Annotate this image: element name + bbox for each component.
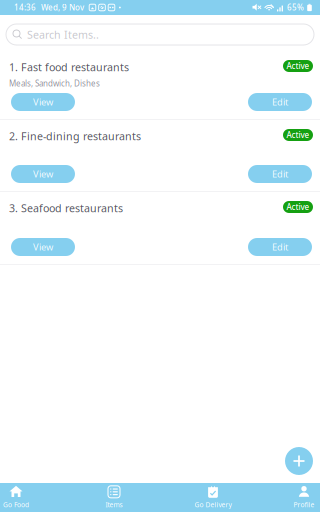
button[interactable]: Add bbox=[285, 447, 313, 475]
button[interactable]: View bbox=[11, 238, 75, 256]
staticText: 1. Fast food restaurants bbox=[9, 60, 129, 74]
staticText: Active bbox=[286, 130, 309, 140]
staticText: Active bbox=[286, 61, 309, 71]
button[interactable]: Edit bbox=[248, 165, 312, 183]
staticText: Edit bbox=[272, 241, 288, 253]
button[interactable]: View bbox=[11, 93, 75, 111]
staticText: View bbox=[33, 96, 53, 108]
button[interactable]: Go Delivery bbox=[186, 486, 240, 509]
staticText: Search Items.. bbox=[27, 27, 99, 42]
staticText: 14:36 bbox=[14, 2, 36, 13]
staticText: Wed, 9 Nov bbox=[41, 2, 84, 13]
staticText: Edit bbox=[272, 96, 288, 108]
button[interactable]: Profile bbox=[277, 486, 320, 509]
button[interactable]: Search Items.. bbox=[6, 24, 314, 45]
staticText: View bbox=[33, 168, 53, 180]
staticText: Profile bbox=[293, 500, 314, 509]
button[interactable]: Edit bbox=[248, 238, 312, 256]
staticText: 2. Fine-dining restaurants bbox=[9, 129, 141, 143]
staticText: Go Delivery bbox=[194, 500, 231, 509]
staticText: Edit bbox=[272, 168, 288, 180]
staticText: Meals, Sandwich, Dishes bbox=[9, 78, 100, 89]
staticText: 3. Seafood restaurants bbox=[9, 201, 123, 215]
button[interactable]: Go Food bbox=[0, 486, 43, 509]
button[interactable]: View bbox=[11, 165, 75, 183]
button[interactable]: Edit bbox=[248, 93, 312, 111]
staticText: Items bbox=[105, 500, 122, 509]
staticText: Active bbox=[286, 202, 309, 212]
staticText: 65% bbox=[287, 2, 304, 13]
staticText: Go Food bbox=[3, 500, 29, 509]
button[interactable]: Items bbox=[87, 486, 141, 509]
staticText: View bbox=[33, 241, 53, 253]
